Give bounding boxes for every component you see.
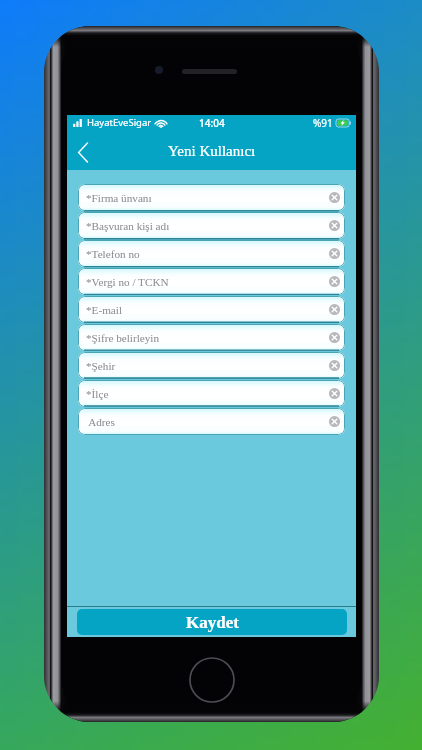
staticText: 14:04	[199, 116, 225, 130]
staticText: *Firma ünvanı	[86, 192, 152, 204]
staticText: *Vergi no / TCKN	[86, 276, 169, 288]
button[interactable]: *Şifre belirleyin	[78, 324, 345, 351]
button[interactable]: *Firma ünvanı	[78, 184, 345, 211]
button[interactable]: Adres	[78, 408, 345, 435]
button[interactable]: *E-mail	[78, 296, 345, 323]
staticText: *Telefon no	[86, 248, 140, 260]
staticText: *Şifre belirleyin	[86, 332, 160, 344]
button[interactable]: *Vergi no / TCKN	[78, 268, 345, 295]
staticText: *E-mail	[86, 304, 123, 316]
button[interactable]: *Şehir	[78, 352, 345, 379]
staticText: *İlçe	[86, 388, 109, 400]
staticText: *Başvuran kişi adı	[86, 220, 170, 232]
staticText: Yeni Kullanıcı	[168, 143, 256, 160]
staticText: Kaydet	[186, 613, 239, 632]
button[interactable]: *Başvuran kişi adı	[78, 212, 345, 239]
button[interactable]: Kaydet	[77, 609, 347, 635]
staticText: Adres	[86, 416, 115, 428]
button[interactable]: *Telefon no	[78, 240, 345, 267]
staticText: %91	[313, 116, 333, 130]
button[interactable]: Back	[67, 134, 99, 170]
button[interactable]: *İlçe	[78, 380, 345, 407]
staticText: HayatEveSigar	[87, 116, 152, 129]
staticText: *Şehir	[86, 360, 116, 372]
